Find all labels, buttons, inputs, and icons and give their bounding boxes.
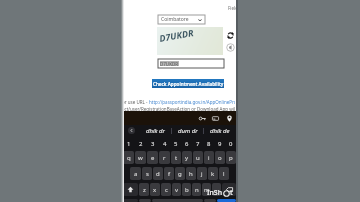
staticText: Coimbatore: [161, 16, 189, 23]
button[interactable]: z: [139, 183, 149, 196]
button[interactable]: dhik de: [204, 125, 236, 136]
staticText: x: [153, 186, 157, 194]
staticText: v: [175, 186, 179, 194]
staticText: d: [156, 170, 160, 178]
button[interactable]: Addresses: [226, 115, 233, 122]
staticText: u: [196, 154, 200, 162]
button[interactable]: w: [135, 151, 146, 164]
button[interactable]: 5: [170, 137, 181, 150]
staticText: g: [178, 170, 182, 178]
staticText: dhik de: [210, 127, 230, 135]
button[interactable]: Comma: [139, 199, 151, 202]
staticText: 3: [151, 140, 155, 148]
staticText: ,: [216, 186, 218, 194]
staticText: t: [175, 154, 178, 162]
staticText: f: [168, 170, 171, 178]
staticText: dum dr: [178, 127, 198, 135]
button[interactable]: f: [164, 167, 174, 180]
button[interactable]: p: [226, 151, 236, 164]
staticText: Check Appointment Availability: [153, 81, 224, 87]
button[interactable]: c: [161, 183, 171, 196]
button[interactable]: 2: [135, 137, 147, 150]
button[interactable]: Payment methods: [212, 115, 219, 122]
button[interactable]: 7: [192, 137, 203, 150]
staticText: z: [143, 186, 146, 194]
staticText: dhik dr: [146, 127, 165, 135]
staticText: ect/user/RegistrationBaseAction or Downl…: [122, 106, 235, 112]
button[interactable]: Previous suggestions: [123, 125, 139, 136]
staticText: y: [185, 154, 189, 162]
button[interactable]: Coimbatore: [158, 15, 205, 24]
button[interactable]: Enter: [217, 199, 236, 202]
button[interactable]: d: [153, 167, 163, 180]
staticText: k: [211, 170, 215, 178]
button[interactable]: i: [204, 151, 214, 164]
button[interactable]: j: [197, 167, 207, 180]
staticText: n: [195, 186, 199, 194]
staticText: b: [185, 186, 189, 194]
button[interactable]: 4: [159, 137, 170, 150]
button[interactable]: Passwords: [199, 115, 206, 122]
button[interactable]: v: [172, 183, 181, 196]
staticText: o: [218, 154, 222, 162]
staticText: a: [134, 170, 138, 178]
staticText: w: [138, 154, 143, 162]
staticText: s: [146, 170, 149, 178]
button[interactable]: 9: [214, 137, 225, 150]
staticText: 0: [229, 140, 233, 148]
staticText: e: [151, 154, 155, 162]
button[interactable]: D7UKDR: [158, 59, 224, 68]
staticText: 6: [185, 140, 189, 148]
button[interactable]: k: [208, 167, 218, 180]
button[interactable]: t: [171, 151, 181, 164]
staticText: 8: [207, 140, 211, 148]
button[interactable]: 0: [225, 137, 236, 150]
staticText: 4: [163, 140, 167, 148]
staticText: p: [229, 154, 233, 162]
staticText: j: [201, 170, 203, 178]
button[interactable]: dum dr: [172, 125, 204, 136]
button[interactable]: 8: [203, 137, 214, 150]
button[interactable]: q: [123, 151, 134, 164]
staticText: or use URL -: [122, 99, 149, 105]
button[interactable]: g: [175, 167, 185, 180]
button[interactable]: 3: [147, 137, 159, 150]
button[interactable]: y: [182, 151, 192, 164]
staticText: D7UKDR: [158, 26, 195, 44]
staticText: Field: [228, 5, 238, 11]
button[interactable]: Symbols: [123, 199, 138, 202]
button[interactable]: x: [150, 183, 160, 196]
staticText: r: [163, 154, 166, 162]
staticText: 2: [139, 140, 143, 148]
button[interactable]: Check Appointment Availability: [152, 79, 224, 88]
staticText: i: [208, 154, 210, 162]
button[interactable]: h: [186, 167, 196, 180]
button[interactable]: a: [130, 167, 141, 180]
button[interactable]: l: [219, 167, 229, 180]
button[interactable]: e: [147, 151, 158, 164]
staticText: l: [223, 170, 225, 178]
button[interactable]: m: [202, 183, 211, 196]
button[interactable]: Period: [204, 199, 216, 202]
button[interactable]: Shift: [123, 183, 138, 196]
button[interactable]: s: [142, 167, 152, 180]
button[interactable]: u: [193, 151, 203, 164]
button[interactable]: o: [215, 151, 225, 164]
button[interactable]: ,: [212, 183, 221, 196]
staticText: InSh: [207, 188, 223, 198]
button[interactable]: n: [192, 183, 201, 196]
button[interactable]: Play audio captcha: [226, 43, 235, 52]
staticText: 1: [127, 140, 131, 148]
button[interactable]: Space: [152, 199, 203, 202]
staticText: c: [165, 186, 168, 194]
button[interactable]: b: [182, 183, 191, 196]
button[interactable]: 6: [181, 137, 192, 150]
button[interactable]: 1: [123, 137, 135, 150]
button[interactable]: Refresh captcha: [226, 31, 235, 40]
staticText: D7UKDR: [160, 61, 179, 66]
staticText: http://passportindia.gov.in/AppOnlinePro…: [149, 99, 235, 105]
button[interactable]: r: [159, 151, 170, 164]
button[interactable]: Backspace: [222, 183, 236, 196]
button[interactable]: dhik dr: [139, 125, 172, 136]
staticText: h: [189, 170, 193, 178]
